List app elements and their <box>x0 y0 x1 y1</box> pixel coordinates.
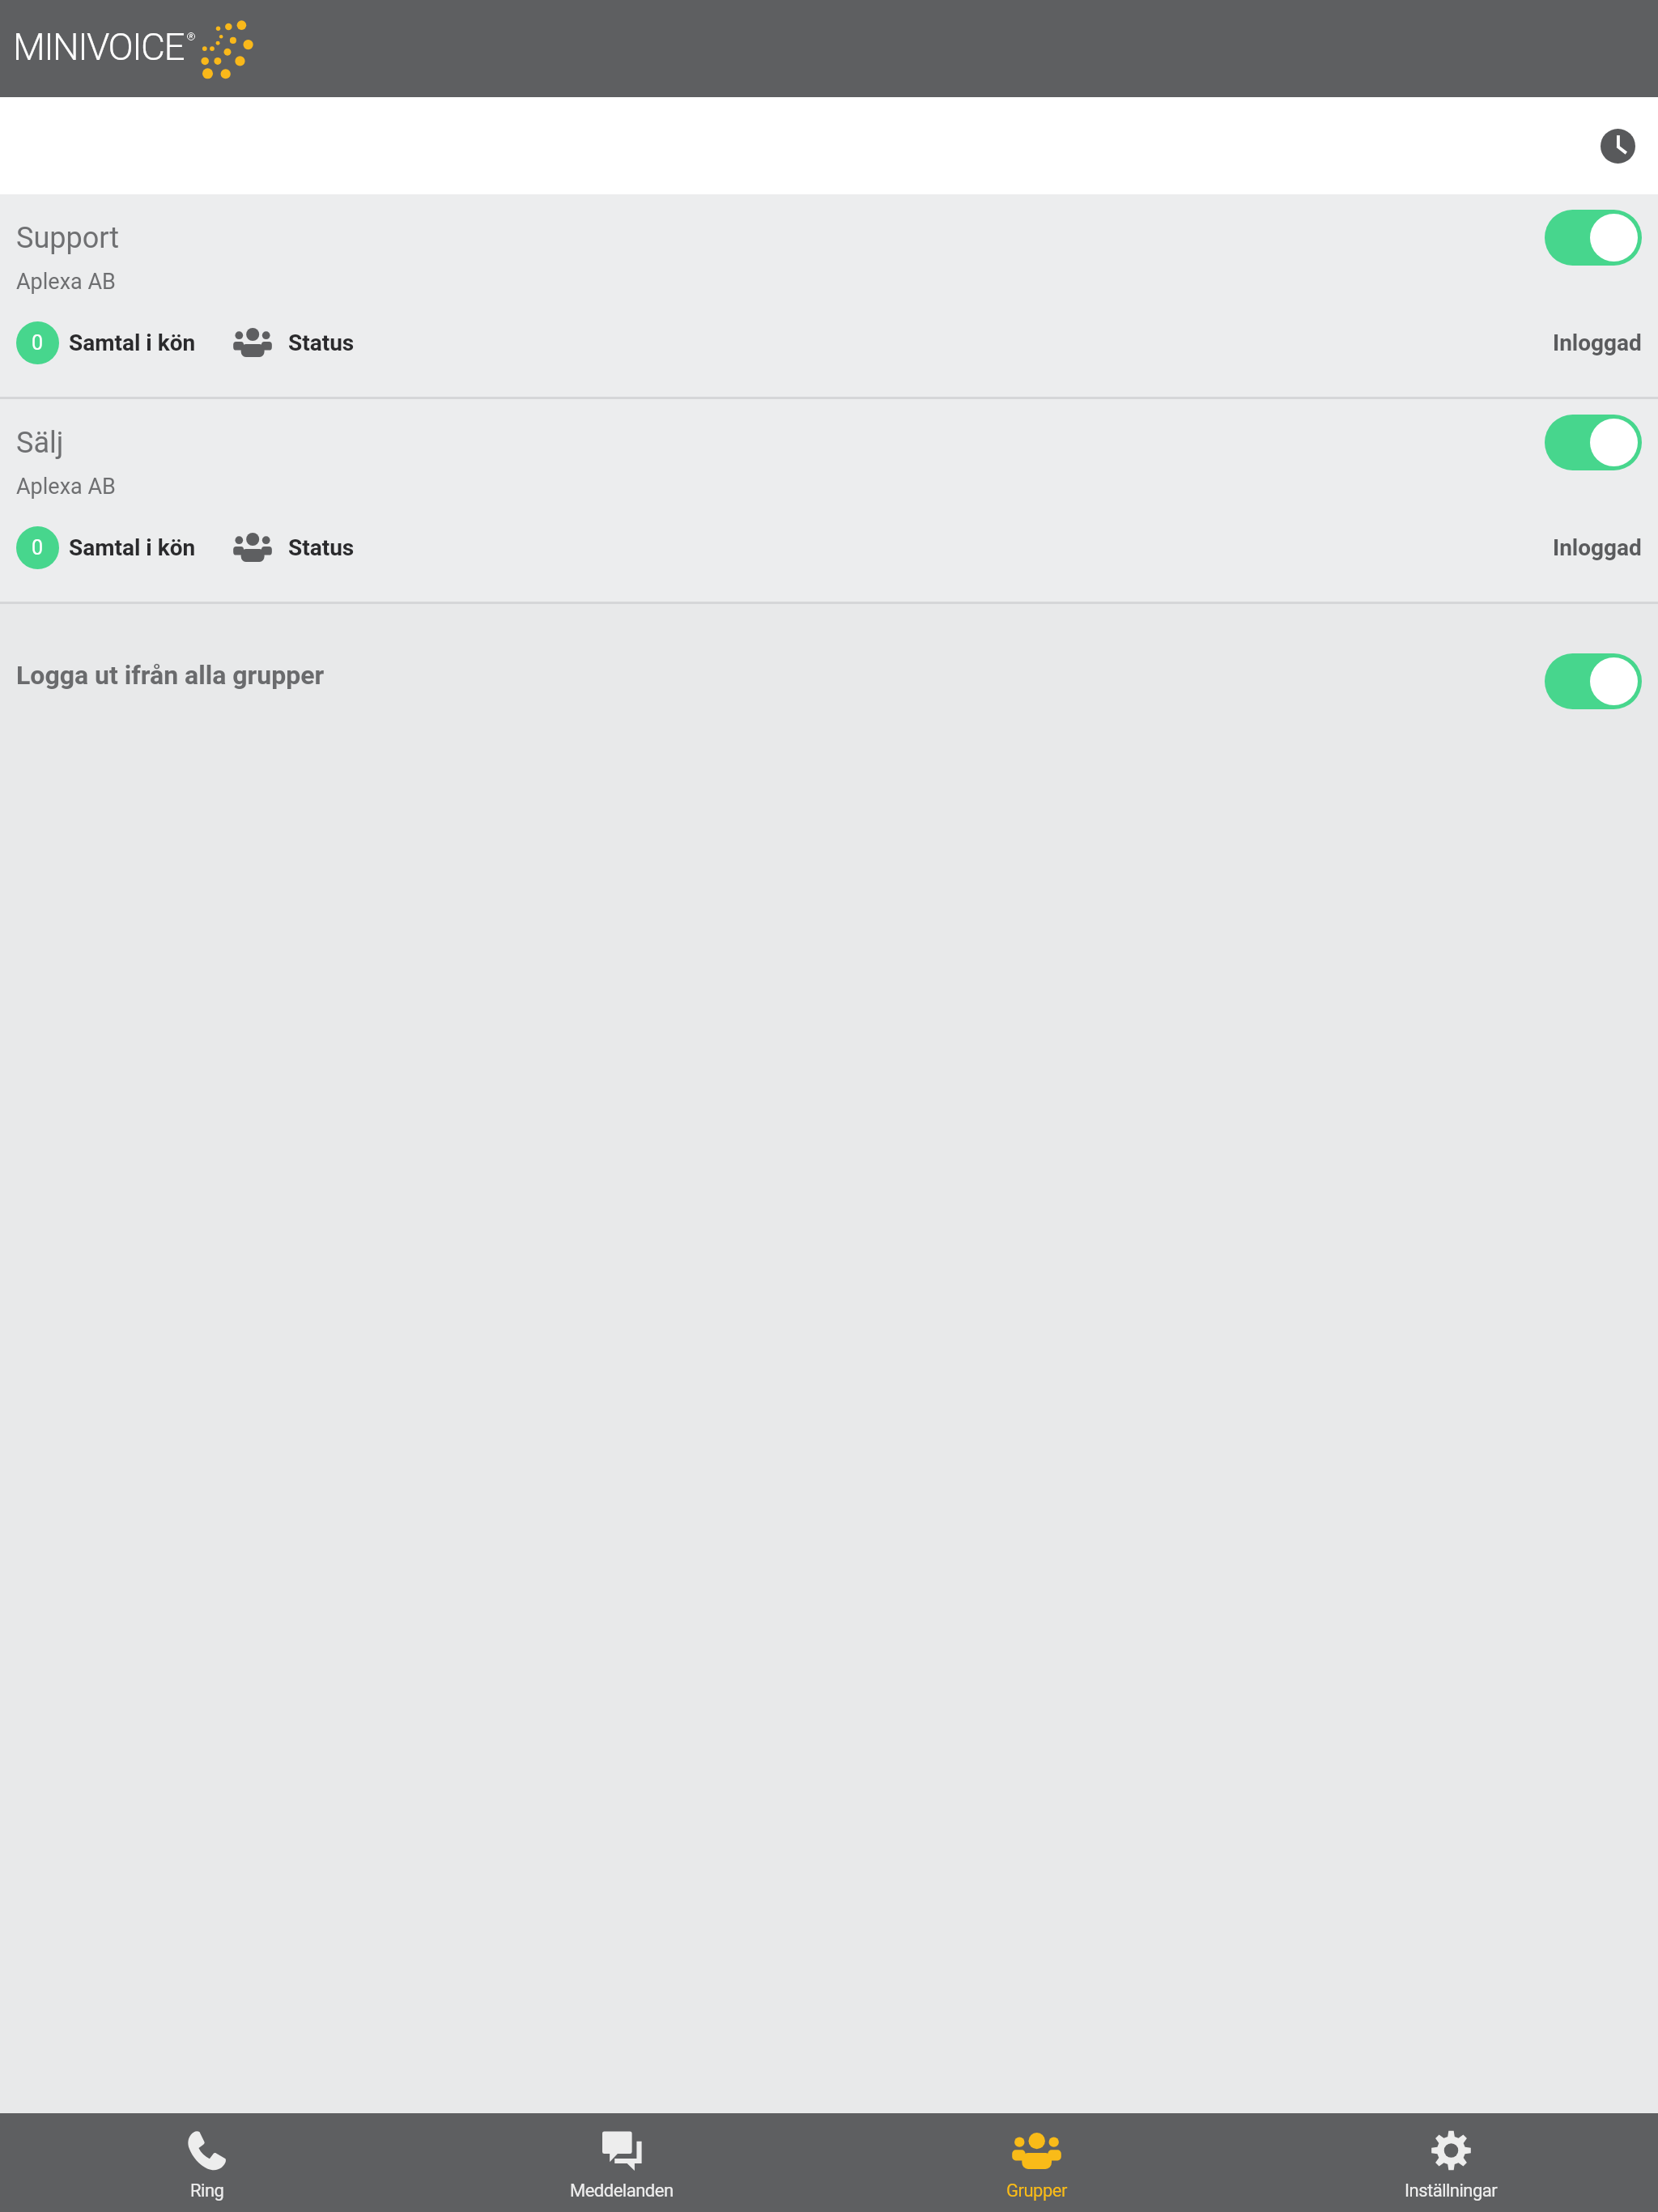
staticText: Inställningar <box>1405 2180 1498 2201</box>
button[interactable]: Sälj <box>0 399 1658 602</box>
staticText: Logga ut ifrån alla grupper <box>16 660 325 691</box>
staticText: MINIVOICE <box>13 25 185 69</box>
button[interactable]: Status <box>233 328 355 358</box>
staticText: Aplexa AB <box>16 474 116 500</box>
staticText: Aplexa AB <box>16 269 116 295</box>
staticText: Status <box>288 330 355 356</box>
staticText: Meddelanden <box>570 2180 674 2201</box>
button[interactable]: Support <box>0 194 1658 397</box>
button[interactable]: Ring <box>0 2113 414 2212</box>
staticText: Support <box>16 221 120 255</box>
button[interactable]: Grupper <box>829 2113 1243 2212</box>
staticText: Inloggad <box>1553 330 1642 356</box>
staticText: Inloggad <box>1553 534 1642 561</box>
button[interactable]: Växla <box>1545 653 1642 709</box>
staticText: 0 <box>32 331 44 355</box>
button[interactable]: 0 <box>16 321 196 364</box>
staticText: 0 <box>32 536 44 559</box>
button[interactable]: Samtalshistorik <box>1588 117 1647 175</box>
staticText: Status <box>288 534 355 561</box>
button[interactable]: Inställningar <box>1243 2113 1658 2212</box>
staticText: Samtal i kön <box>69 330 196 356</box>
button[interactable]: Meddelanden <box>414 2113 829 2212</box>
button[interactable]: Växla <box>1545 210 1642 266</box>
staticText: Ring <box>190 2180 224 2201</box>
button[interactable]: Status <box>233 533 355 563</box>
staticText: Sälj <box>16 426 64 460</box>
button[interactable]: Logga ut ifrån alla grupper <box>0 604 1658 727</box>
button[interactable]: Växla <box>1545 415 1642 470</box>
staticText: Grupper <box>1006 2180 1067 2201</box>
staticText: Samtal i kön <box>69 534 196 561</box>
button[interactable]: 0 <box>16 526 196 569</box>
